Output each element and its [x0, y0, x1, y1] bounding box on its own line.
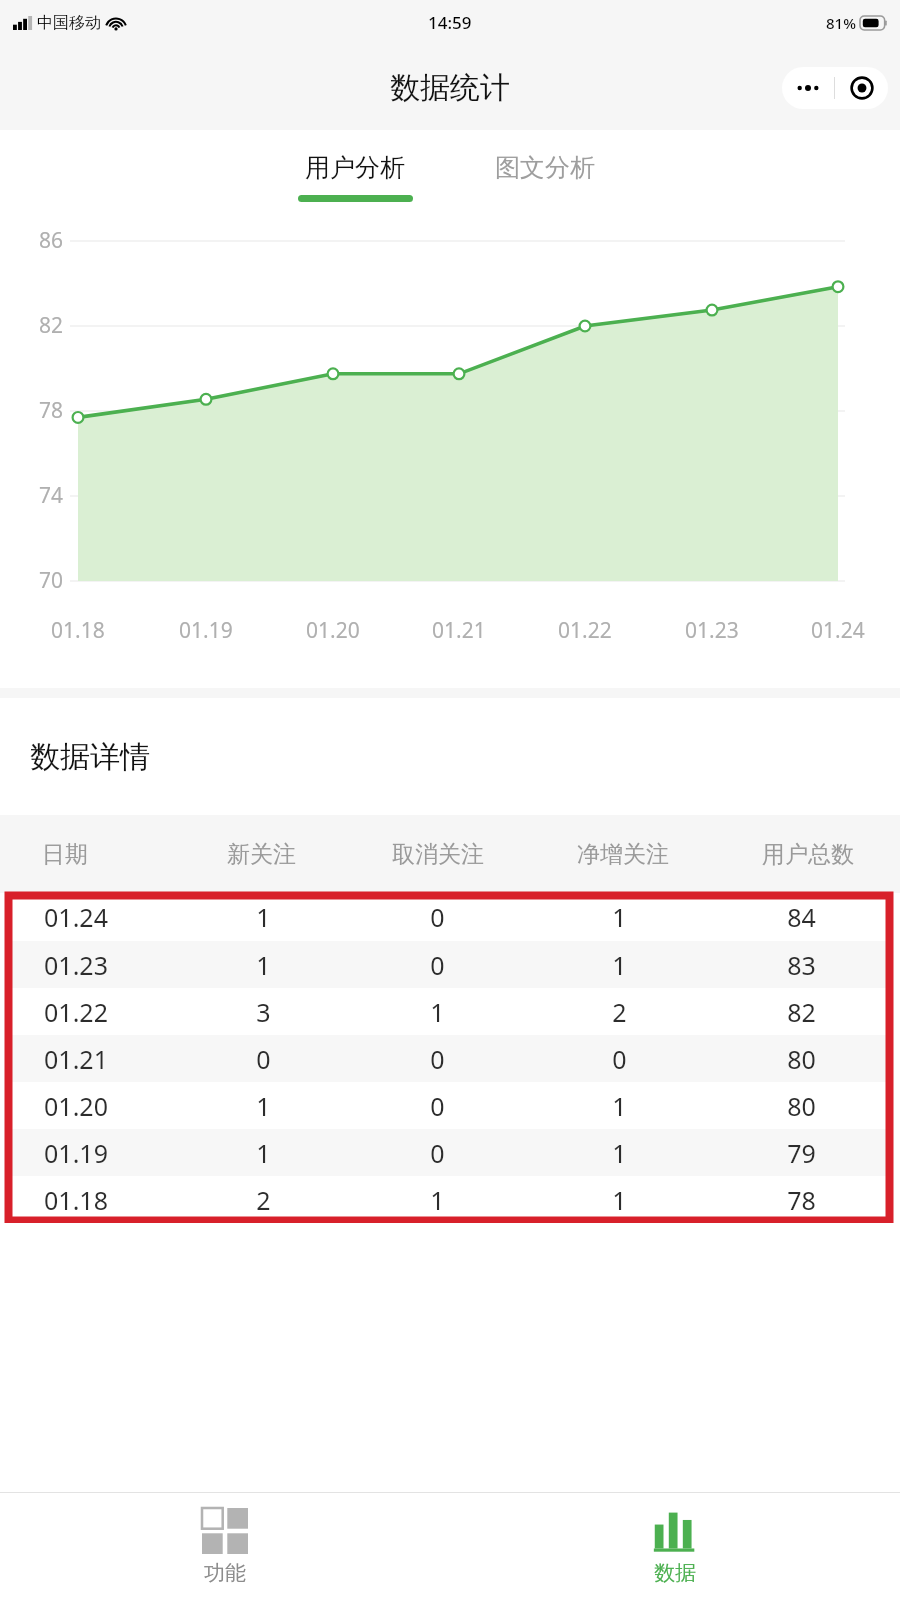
staticText: 80 [787, 1089, 816, 1123]
staticText: 01.21 [44, 1042, 108, 1076]
button[interactable]: 用户分析 [260, 130, 450, 202]
button[interactable]: More [782, 83, 834, 93]
staticText: 中国移动 [37, 13, 101, 33]
staticText: 净增关注 [577, 840, 669, 869]
staticText: 01.22 [558, 616, 612, 645]
staticText: 14:59 [428, 11, 472, 34]
staticText: 日期 [42, 840, 88, 869]
staticText: 01.22 [44, 995, 108, 1029]
staticText: 83 [787, 948, 816, 982]
button[interactable]: More [782, 67, 888, 109]
staticText: 01.23 [685, 616, 739, 645]
staticText: 功能 [204, 1560, 246, 1586]
staticText: 2 [256, 1183, 271, 1217]
staticText: 01.18 [51, 616, 105, 645]
staticText: 用户分析 [305, 152, 405, 183]
staticText: 1 [612, 900, 627, 934]
staticText: 用户总数 [762, 840, 854, 869]
staticText: 3 [256, 995, 271, 1029]
staticText: 01.19 [179, 616, 233, 645]
staticText: 01.18 [44, 1183, 108, 1217]
button[interactable]: 01.24 [6, 893, 892, 941]
staticText: 82 [39, 311, 64, 340]
button[interactable]: 功能 [178, 1502, 272, 1592]
staticText: 取消关注 [392, 840, 484, 869]
staticText: 图文分析 [495, 152, 595, 183]
button[interactable]: 01.21 [6, 1035, 892, 1082]
staticText: 0 [430, 1089, 445, 1123]
staticText: 1 [256, 948, 271, 982]
button[interactable]: 数据 [628, 1502, 722, 1592]
button[interactable]: 01.22 [6, 988, 892, 1035]
staticText: 01.23 [44, 948, 108, 982]
staticText: 0 [612, 1042, 627, 1076]
staticText: 86 [39, 226, 64, 255]
staticText: 01.19 [44, 1136, 108, 1170]
button[interactable]: 图文分析 [450, 130, 640, 183]
staticText: 1 [430, 995, 445, 1029]
staticText: 1 [256, 900, 271, 934]
staticText: 79 [787, 1136, 816, 1170]
staticText: 74 [39, 481, 64, 510]
staticText: 1 [256, 1136, 271, 1170]
staticText: 2 [612, 995, 627, 1029]
staticText: 84 [787, 900, 816, 934]
staticText: 80 [787, 1042, 816, 1076]
staticText: 1 [612, 1089, 627, 1123]
staticText: 0 [256, 1042, 271, 1076]
staticText: 1 [256, 1089, 271, 1123]
button[interactable]: 01.20 [6, 1082, 892, 1129]
staticText: 01.24 [811, 616, 865, 645]
button[interactable]: 01.19 [6, 1129, 892, 1176]
button[interactable]: Close [835, 75, 888, 101]
staticText: 0 [430, 948, 445, 982]
staticText: 1 [612, 1183, 627, 1217]
staticText: 01.21 [432, 616, 486, 645]
staticText: 1 [612, 1136, 627, 1170]
staticText: 0 [430, 900, 445, 934]
staticText: 新关注 [227, 840, 296, 869]
staticText: 78 [39, 396, 64, 425]
staticText: 数据 [654, 1560, 696, 1586]
staticText: 01.24 [44, 900, 108, 934]
staticText: 70 [39, 566, 64, 595]
staticText: 78 [787, 1183, 816, 1217]
staticText: 0 [430, 1042, 445, 1076]
staticText: 数据详情 [30, 738, 150, 776]
staticText: 01.20 [306, 616, 360, 645]
staticText: 1 [612, 948, 627, 982]
staticText: 01.20 [44, 1089, 108, 1123]
staticText: 0 [430, 1136, 445, 1170]
button[interactable]: 01.18 [6, 1176, 892, 1223]
staticText: 81% [826, 13, 856, 33]
staticText: 数据统计 [390, 69, 510, 107]
staticText: 82 [787, 995, 816, 1029]
button[interactable]: 01.23 [6, 941, 892, 988]
staticText: 1 [430, 1183, 445, 1217]
